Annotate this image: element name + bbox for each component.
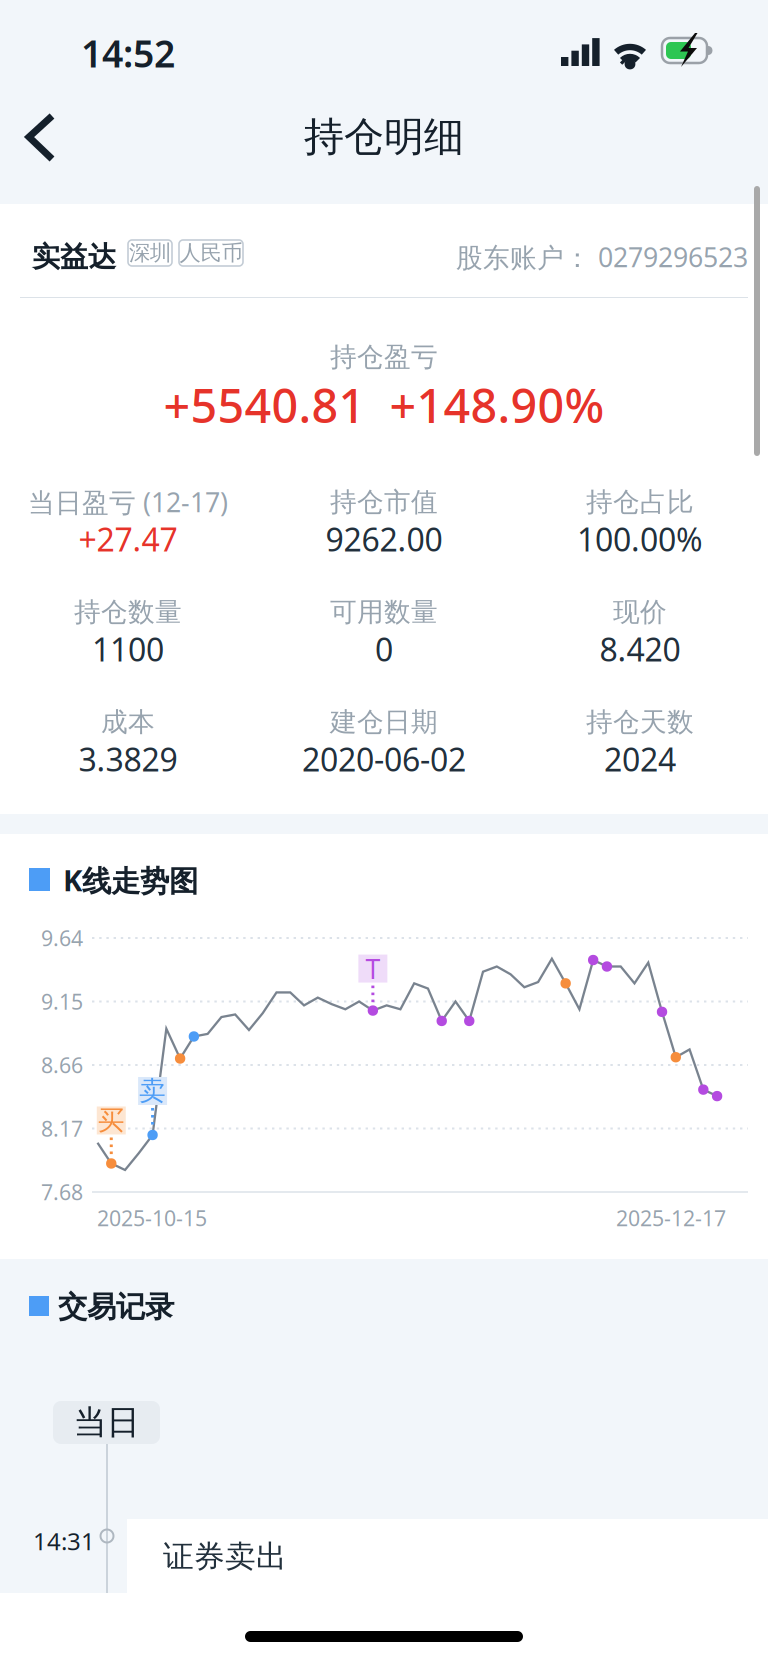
button[interactable]: 证券卖出 bbox=[0, 0, 477, 75]
staticText: 买 bbox=[98, 1104, 125, 1137]
staticText: 持仓占比 bbox=[586, 486, 694, 518]
staticText: 9.15 bbox=[41, 987, 83, 1016]
staticText: 持仓明细 bbox=[304, 112, 464, 161]
staticText: T bbox=[365, 951, 380, 986]
staticText: 8.420 bbox=[599, 628, 680, 670]
staticText: 7.68 bbox=[41, 1178, 83, 1206]
staticText: 2025-10-15 bbox=[97, 1204, 207, 1232]
staticText: 1100 bbox=[92, 628, 164, 670]
staticText: 交易记录 bbox=[58, 1289, 174, 1325]
staticText: 3.3829 bbox=[78, 738, 177, 780]
staticText: 14:31 bbox=[33, 1525, 95, 1557]
staticText: +5540.81 +148.90% bbox=[163, 374, 604, 436]
staticText: 证券卖出 bbox=[163, 1538, 287, 1575]
staticText: 持仓数量 bbox=[74, 596, 182, 628]
staticText: 可用数量 bbox=[330, 596, 438, 628]
staticText: 持仓市值 bbox=[330, 486, 438, 518]
staticText: 成本 bbox=[101, 706, 155, 738]
staticText: 建仓日期 bbox=[330, 706, 438, 738]
staticText: 股东账户： 0279296523 bbox=[456, 239, 748, 275]
staticText: 2020-06-02 bbox=[302, 738, 466, 780]
staticText: 深圳 bbox=[129, 240, 171, 266]
staticText: 卖 bbox=[139, 1075, 166, 1107]
staticText: 2024 bbox=[604, 738, 676, 780]
staticText: 实益达 bbox=[32, 240, 116, 274]
staticText: 持仓天数 bbox=[586, 706, 694, 738]
staticText: 现价 bbox=[613, 596, 667, 628]
staticText: 9.64 bbox=[41, 924, 83, 952]
staticText: 2025-12-17 bbox=[616, 1204, 726, 1232]
staticText: 8.17 bbox=[41, 1114, 83, 1143]
staticText: 14:52 bbox=[81, 28, 175, 78]
staticText: 8.66 bbox=[41, 1051, 83, 1079]
staticText: 0 bbox=[375, 628, 393, 670]
staticText: K线走势图 bbox=[63, 860, 198, 899]
staticText: +27.47 bbox=[78, 518, 177, 560]
staticText: 当日盈亏 (12-17) bbox=[28, 484, 228, 520]
button[interactable]: Back bbox=[0, 0, 768, 1663]
staticText: 人民币 bbox=[179, 240, 242, 266]
staticText: 100.00% bbox=[577, 518, 703, 560]
staticText: 当日 bbox=[73, 1402, 139, 1443]
staticText: 持仓盈亏 bbox=[330, 341, 438, 373]
staticText: 9262.00 bbox=[325, 518, 442, 560]
